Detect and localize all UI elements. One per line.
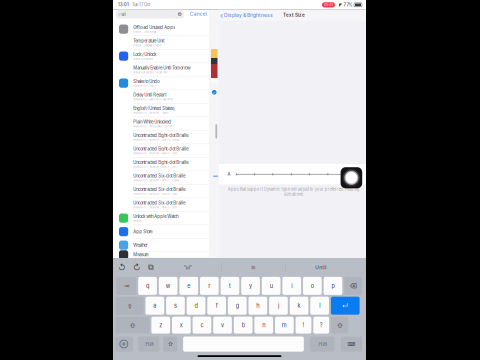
button[interactable]: u	[262, 277, 280, 295]
button[interactable]: y	[241, 277, 260, 295]
staticText: Apps that support Dynamic Type will adju…	[227, 187, 359, 197]
staticText: Passcode	[133, 220, 141, 222]
button[interactable]: Weather	[113, 239, 209, 252]
button[interactable]: ⇧	[331, 317, 348, 334]
button[interactable]: b	[234, 317, 252, 334]
button[interactable]: Uncontracted Six-dot Braille	[113, 171, 209, 185]
button[interactable]: j	[269, 297, 288, 315]
button[interactable]: x	[172, 317, 191, 334]
staticText: Manually Enable Until Tomorrow	[133, 65, 190, 70]
staticText: ↵	[342, 302, 349, 310]
button[interactable]: !	[296, 317, 311, 334]
button[interactable]: in	[251, 264, 255, 270]
button[interactable]: App Store	[113, 225, 209, 239]
staticText: ⊕	[119, 340, 128, 348]
staticText: ‹	[220, 10, 223, 20]
button[interactable]: ⌨	[341, 336, 362, 352]
button[interactable]: Shake to Undo	[113, 77, 209, 90]
button[interactable]: q	[138, 277, 157, 295]
staticText: Lock / Unlock	[133, 52, 156, 57]
button[interactable]: e	[179, 277, 198, 295]
button[interactable]: c	[193, 317, 211, 334]
button[interactable]: o	[303, 277, 322, 295]
staticText: Accessibility › VoiceOver › Braille › Ou…	[133, 139, 179, 141]
staticText: Uncontracted Eight-dot Braille	[133, 160, 188, 165]
button[interactable]: ⊕	[115, 336, 133, 352]
button[interactable]: Plain White Unlocked	[113, 117, 209, 131]
button[interactable]: .?123	[310, 336, 334, 352]
button[interactable]: Uncontracted Eight-dot Braille	[113, 131, 209, 144]
staticText: 13:01	[118, 2, 129, 7]
staticText: v	[221, 322, 224, 329]
button[interactable]: h	[248, 297, 267, 315]
button[interactable]: Redo	[133, 263, 141, 272]
button[interactable]: Until	[315, 264, 326, 270]
button[interactable]: s	[166, 297, 185, 315]
staticText: App Store	[133, 229, 152, 234]
button[interactable]: a	[145, 297, 164, 315]
staticText: 00:03	[324, 3, 333, 7]
button[interactable]: ⇥	[116, 277, 136, 295]
button[interactable]: ↵	[331, 297, 360, 315]
staticText: f	[216, 302, 218, 309]
staticText: General › iPad Storage	[133, 31, 156, 33]
button[interactable]: m	[275, 317, 294, 334]
button[interactable]: n	[254, 317, 273, 334]
staticText: ⇧	[337, 321, 343, 329]
staticText: A	[227, 172, 230, 177]
button[interactable]: p	[324, 277, 342, 295]
button[interactable]: d	[187, 297, 205, 315]
staticText: ⇥	[123, 282, 129, 290]
button[interactable]: Uncontracted Eight-dot Braille	[113, 158, 209, 171]
button[interactable]: Paste	[148, 263, 154, 271]
button[interactable]	[183, 336, 304, 352]
staticText: Accessibility › VoiceOver › Braille › In…	[133, 193, 177, 195]
button[interactable]: ⇧	[115, 317, 149, 334]
button[interactable]: ?	[313, 317, 329, 334]
button[interactable]: Uncontracted Eight-dot Braille	[113, 144, 209, 158]
staticText: Weather	[133, 243, 148, 248]
staticText: Accessibility › Touch	[133, 85, 154, 87]
button[interactable]: f	[207, 297, 226, 315]
button[interactable]: t	[221, 277, 239, 295]
button[interactable]: Delay Until Restart	[113, 90, 209, 104]
button[interactable]: ⇧	[163, 336, 177, 352]
button[interactable]: ⇪	[116, 297, 144, 315]
staticText: Until	[315, 264, 326, 270]
staticText: z	[159, 322, 162, 329]
button[interactable]: i	[282, 277, 301, 295]
button[interactable]: z	[151, 317, 170, 334]
button[interactable]: Measure	[113, 252, 209, 258]
button[interactable]: g	[228, 297, 247, 315]
staticText: ⌫	[349, 282, 356, 290]
button[interactable]: ‹	[220, 10, 273, 20]
button[interactable]: Temperature Unit	[113, 36, 209, 50]
staticText: !	[302, 322, 304, 329]
staticText: ×	[178, 12, 181, 16]
button[interactable]: .?123	[138, 336, 159, 352]
staticText: Cancel	[190, 11, 207, 17]
button[interactable]: Lock / Unlock	[113, 50, 209, 63]
button[interactable]: w	[159, 277, 177, 295]
staticText: Accessibility › VoiceOver › Braille › Ou…	[133, 179, 179, 182]
button[interactable]: Manually Enable Until Tomorrow	[113, 63, 209, 77]
button[interactable]: "ui"	[184, 264, 192, 270]
button[interactable]: ⌫	[344, 277, 362, 295]
staticText: A	[352, 169, 358, 179]
staticText: Uncontracted Eight-dot Braille	[133, 146, 188, 151]
staticText: d	[194, 302, 197, 309]
button[interactable]: Uncontracted Six-dot Braille	[113, 185, 209, 198]
staticText: m	[282, 322, 287, 329]
staticText: "ui"	[184, 264, 192, 270]
button[interactable]: k	[290, 297, 308, 315]
button[interactable]: Uncontracted Six-dot Braille	[113, 198, 209, 212]
button[interactable]: Offload Unused Apps	[113, 23, 209, 36]
button[interactable]: Unlock with Apple Watch	[113, 212, 209, 225]
button[interactable]: Cancel	[190, 11, 207, 17]
button[interactable]: English (United States)	[113, 104, 209, 117]
button[interactable]: Undo	[118, 263, 126, 272]
button[interactable]: r	[200, 277, 219, 295]
button[interactable]: l	[310, 297, 329, 315]
staticText: Unlock with Apple Watch	[133, 214, 178, 219]
button[interactable]: v	[213, 317, 232, 334]
